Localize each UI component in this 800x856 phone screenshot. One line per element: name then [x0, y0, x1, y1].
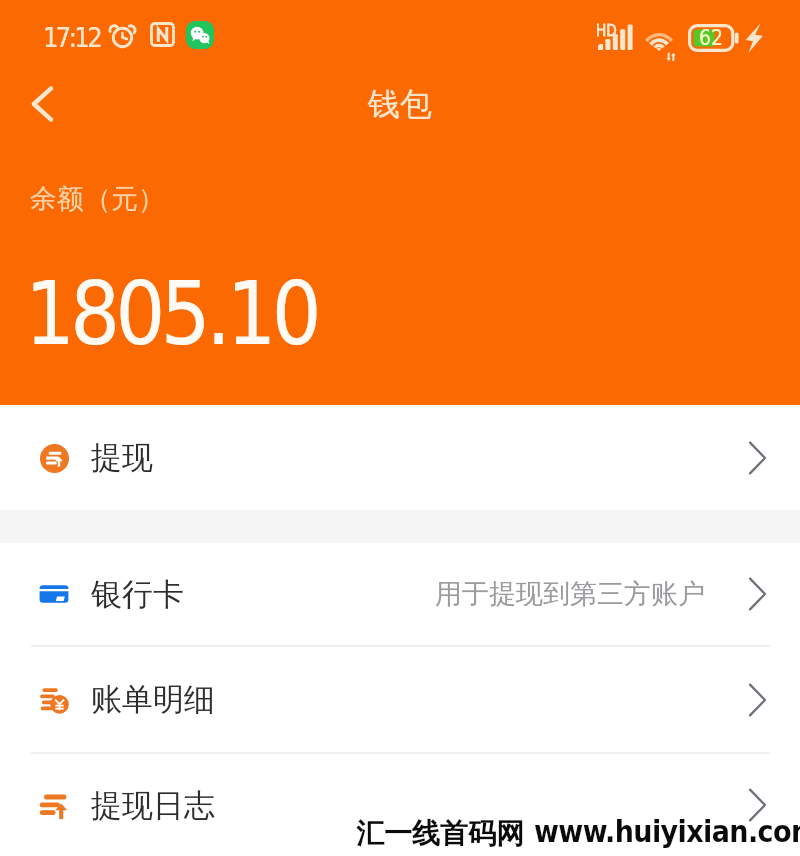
staticText: www.huiyixian.com: [534, 814, 800, 849]
staticText: 余额（元）: [30, 182, 165, 216]
staticText: 提现日志: [91, 786, 215, 825]
staticText: 汇一线首码网: [356, 816, 524, 851]
staticText: 1805.10: [25, 263, 318, 364]
button[interactable]: 账单明细: [0, 647, 800, 752]
staticText: 银行卡: [91, 575, 184, 614]
staticText: 钱包: [368, 84, 432, 124]
button[interactable]: Back: [14, 76, 70, 132]
staticText: 提现: [91, 438, 153, 477]
staticText: HD: [596, 22, 617, 39]
staticText: 用于提现到第三方账户: [435, 577, 705, 611]
button[interactable]: 提现: [0, 405, 800, 510]
staticText: 账单明细: [91, 680, 215, 719]
button[interactable]: 银行卡: [0, 543, 800, 645]
staticText: 62: [699, 26, 724, 50]
staticText: 17:12: [43, 22, 100, 53]
button[interactable]: 提现日志: [0, 754, 800, 856]
